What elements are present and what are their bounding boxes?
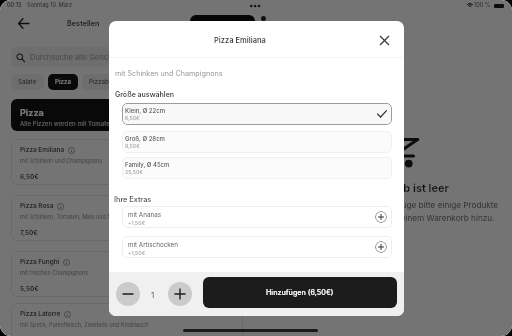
staticText: Salate (18, 78, 37, 86)
staticText: +1,50€ (128, 220, 146, 226)
staticText: Pizza Latorre (20, 310, 61, 318)
staticText: 5,50€ (20, 285, 39, 293)
button[interactable]: Family, Ø 45cm (122, 157, 392, 179)
staticText: Klein, Ø 22cm (125, 107, 166, 114)
staticText: Pizza (20, 107, 44, 118)
staticText: Alle Pizzen werden mit Tomatensauce und (20, 120, 144, 128)
button[interactable]: mit Ananas (122, 206, 392, 228)
button[interactable]: Groß, Ø 28cm (122, 131, 392, 153)
staticText: Dein Warenkorb ist leer (325, 181, 449, 194)
staticText: Pizza Funghi (20, 258, 60, 266)
staticText: mit Ananas (128, 211, 162, 219)
button[interactable]: Pizza Rosa (11, 195, 243, 241)
staticText: Hinzufügen (6,50€) (266, 288, 334, 297)
staticText: Pizzabrötchen (89, 78, 132, 86)
staticText: Durchsuche alle Gerichte (30, 53, 120, 62)
button[interactable]: Pizza (48, 74, 78, 90)
staticText: mit Schinken, Tomaten, Mais und Mozzarel… (20, 214, 136, 221)
staticText: 25,50€ (125, 169, 143, 175)
staticText: Pizza Emiliana (20, 146, 65, 154)
button[interactable]: mit Artischocken (122, 236, 392, 258)
button[interactable]: Zurück (15, 15, 32, 32)
button[interactable]: Warenkorb (190, 15, 255, 33)
button[interactable]: Extra hinzufügen (375, 211, 387, 223)
button[interactable]: Schließen (374, 30, 394, 50)
staticText: Ihre Extras (114, 195, 152, 204)
button[interactable]: Nudeln (143, 74, 179, 90)
staticText: mit Artischocken (128, 241, 178, 249)
staticText: Pizza Rosa (20, 202, 54, 210)
staticText: 00:13 (7, 2, 22, 9)
staticText: mit Speck, Putenfleisch, Zwiebeln und Kn… (20, 322, 149, 329)
staticText: Größe auswählen (115, 90, 175, 98)
staticText: 6,50€ (20, 173, 39, 181)
button[interactable]: Durchsuche alle Gerichte (11, 47, 243, 67)
button[interactable]: Pizza Emiliana (11, 139, 243, 185)
staticText: 6,50€ (125, 115, 140, 121)
staticText: mit Schinken und Champignons (20, 158, 103, 165)
staticText: +1,50€ (128, 250, 146, 256)
button[interactable]: Pizzabrötchen (82, 74, 139, 90)
staticText: 100 % (474, 2, 491, 9)
staticText: Pizza Emiliana (214, 36, 266, 45)
staticText: Sonntag 10. März (27, 2, 73, 9)
button[interactable]: Menge verringern (116, 282, 140, 306)
button[interactable]: Klein, Ø 22cm (122, 103, 392, 125)
button[interactable]: Salate (11, 74, 44, 90)
button[interactable]: Hinzufügen (6,50€) (203, 277, 397, 308)
staticText: Füge bitte einige Produkte (397, 200, 499, 210)
button[interactable]: Pizza Latorre (11, 303, 243, 336)
staticText: Bestellen (67, 19, 100, 28)
staticText: mit Schinken und Champignons (115, 69, 223, 78)
staticText: mit frischen Champignons (20, 270, 89, 277)
staticText: Groß, Ø 28cm (125, 135, 165, 142)
button[interactable]: Extra hinzufügen (375, 241, 387, 253)
button[interactable]: Pizza Funghi (11, 251, 243, 297)
staticText: Family, Ø 45cm (125, 161, 170, 168)
staticText: 1 (151, 290, 155, 300)
staticText: 9,50€ (125, 143, 140, 149)
staticText: zu deinem Warenkorb hinzu. (384, 213, 495, 223)
staticText: 7,50€ (20, 229, 38, 237)
button[interactable]: Menge erhöhen (168, 282, 192, 306)
staticText: Pizza (55, 78, 71, 86)
